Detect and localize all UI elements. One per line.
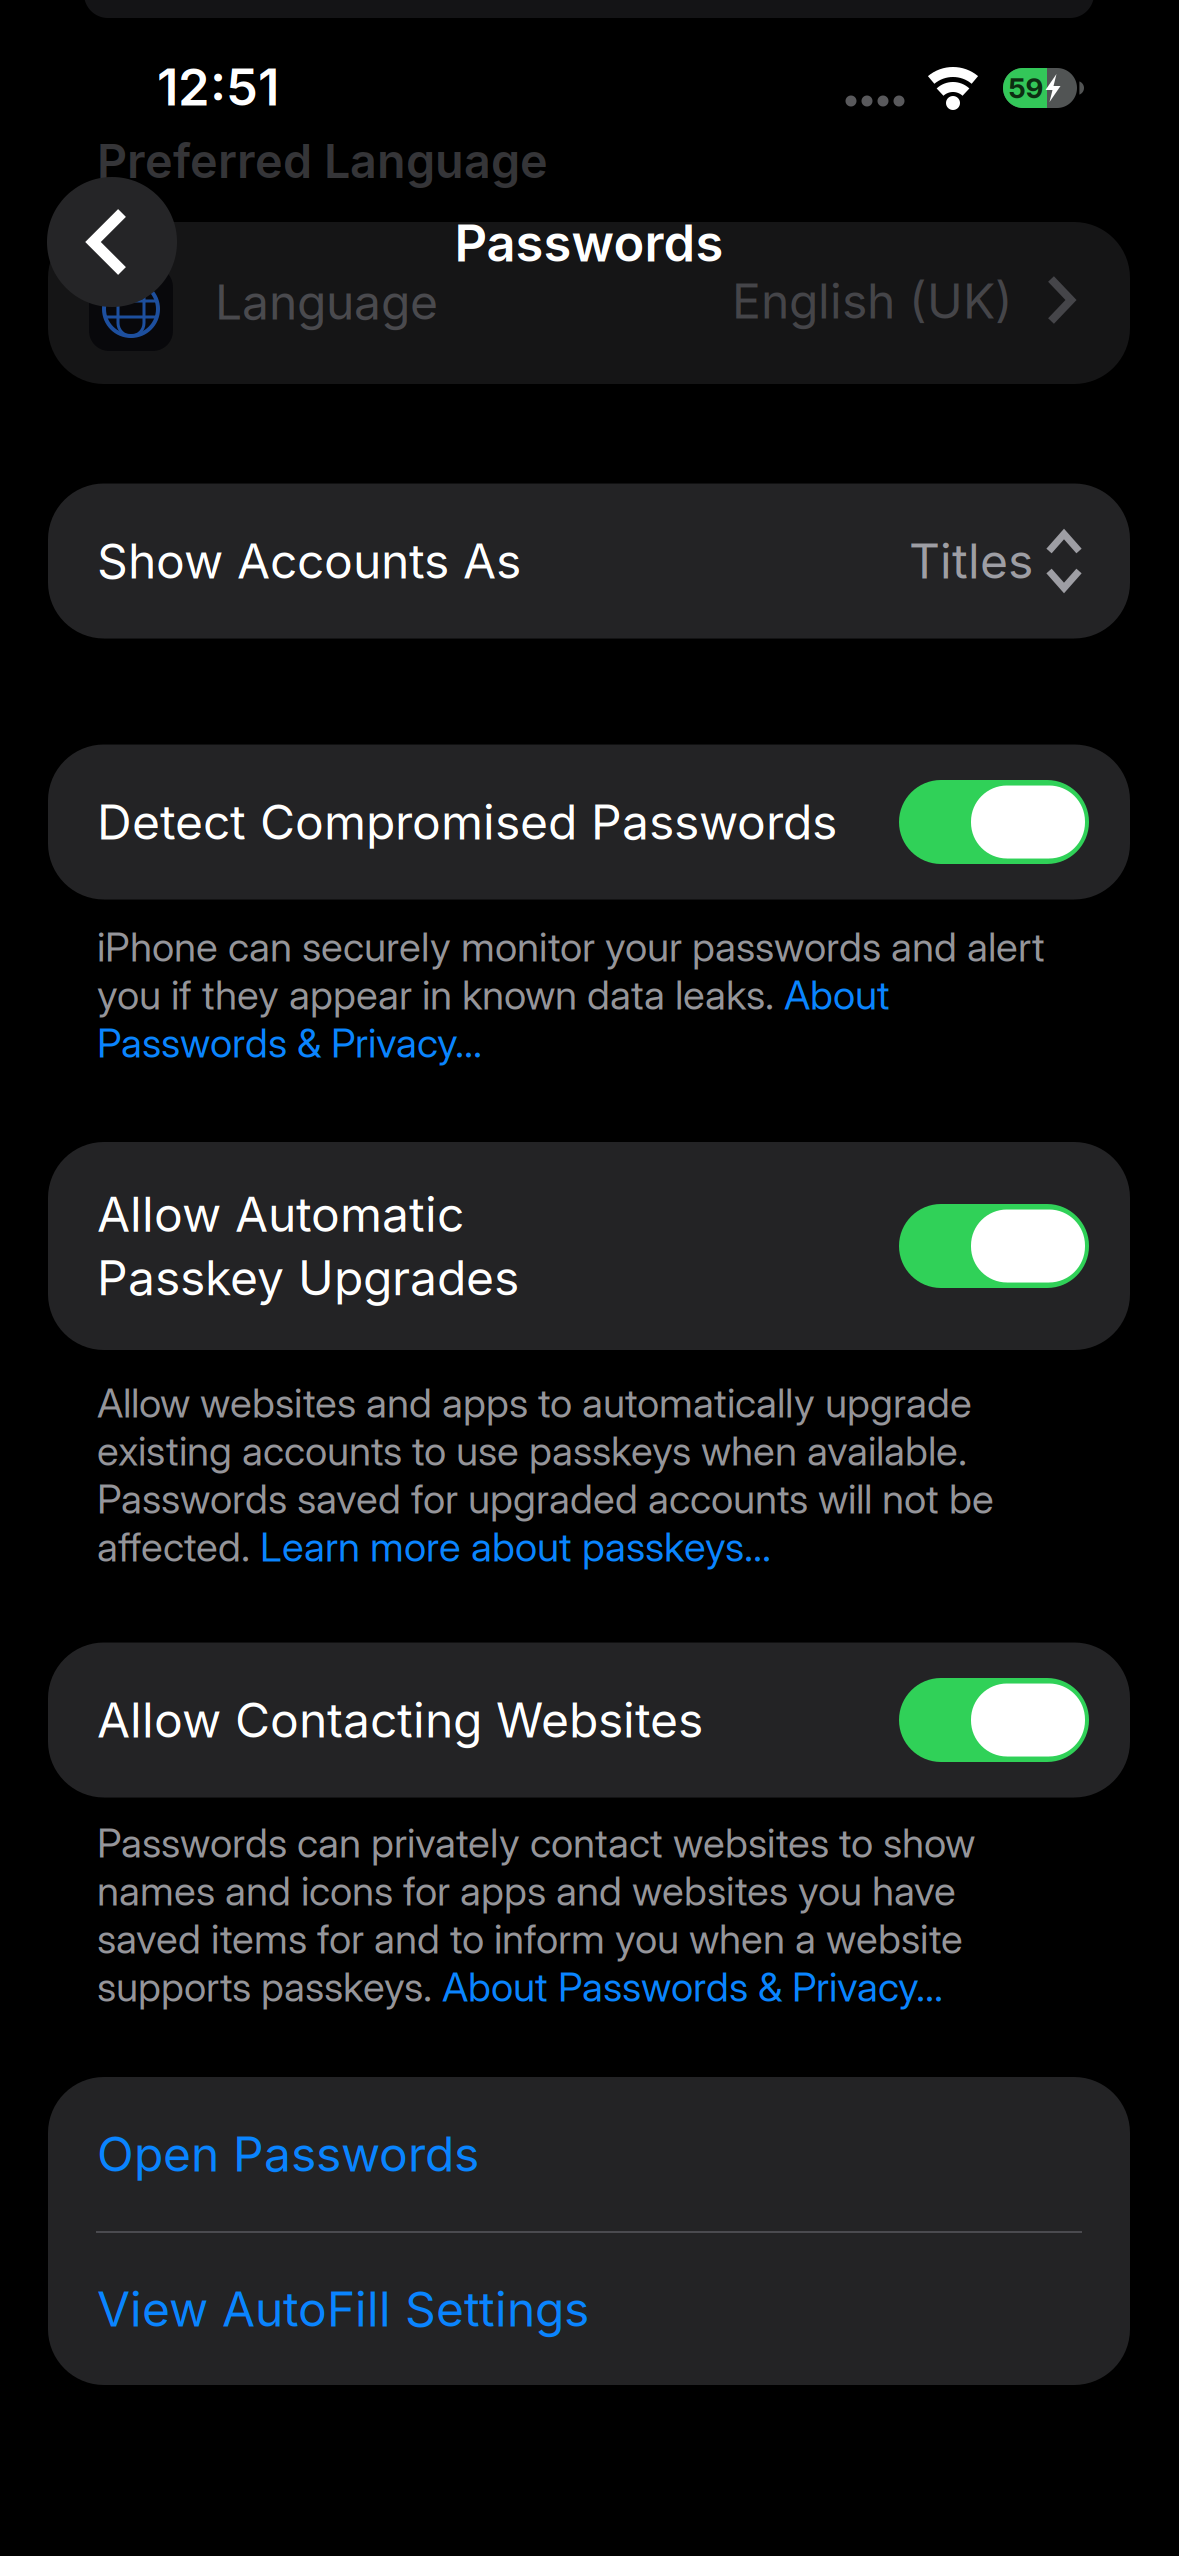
button[interactable]: About Passwords & Privacy... <box>442 1963 943 2011</box>
staticText: affected. <box>97 1523 260 1571</box>
staticText: supports passkeys. <box>97 1963 442 2011</box>
staticText: Passwords & Privacy... <box>97 1019 482 1067</box>
staticText: Preferred Language <box>97 133 548 189</box>
staticText: Open Passwords <box>97 2126 479 2182</box>
staticText: English (UK) <box>732 273 1013 329</box>
staticText: Allow Automatic <box>97 1186 464 1242</box>
staticText: Learn more about passkeys... <box>260 1523 771 1571</box>
staticText: About <box>784 971 890 1019</box>
staticText: names and icons for apps and websites yo… <box>97 1867 956 1915</box>
button[interactable]: About <box>784 971 890 1019</box>
button[interactable]: Allow Automatic <box>48 1142 1130 1350</box>
button[interactable]: View AutoFill Settings <box>48 2233 1130 2385</box>
staticText: Allow websites and apps to automatically… <box>97 1379 972 1427</box>
staticText: saved items for and to inform you when a… <box>97 1915 963 1963</box>
staticText: Titles <box>909 533 1033 589</box>
button[interactable]: Open Passwords <box>48 2077 1130 2231</box>
staticText: Passwords <box>454 213 723 273</box>
staticText: Show Accounts As <box>97 533 521 589</box>
button[interactable]: Back <box>47 177 177 307</box>
staticText: 59 <box>1008 71 1043 104</box>
staticText: Passwords can privately contact websites… <box>97 1819 975 1867</box>
button[interactable]: Passwords & Privacy... <box>97 1019 482 1067</box>
staticText: Allow Contacting Websites <box>97 1692 703 1748</box>
button[interactable]: Learn more about passkeys... <box>260 1523 771 1571</box>
staticText: 12:51 <box>157 57 279 117</box>
button[interactable]: Allow Contacting Websites <box>48 1642 1130 1797</box>
staticText: Passwords saved for upgraded accounts wi… <box>97 1475 994 1523</box>
staticText: existing accounts to use passkeys when a… <box>97 1427 967 1475</box>
staticText: you if they appear in known data leaks. <box>97 971 784 1019</box>
staticText: iPhone can securely monitor your passwor… <box>97 923 1045 971</box>
staticText: Passkey Upgrades <box>97 1249 519 1306</box>
button[interactable]: Show Accounts As <box>48 483 1130 638</box>
staticText: View AutoFill Settings <box>97 2281 589 2337</box>
button[interactable]: Detect Compromised Passwords <box>48 744 1130 899</box>
staticText: Detect Compromised Passwords <box>97 794 837 850</box>
staticText: About Passwords & Privacy... <box>442 1963 943 2011</box>
staticText: Language <box>215 274 438 330</box>
